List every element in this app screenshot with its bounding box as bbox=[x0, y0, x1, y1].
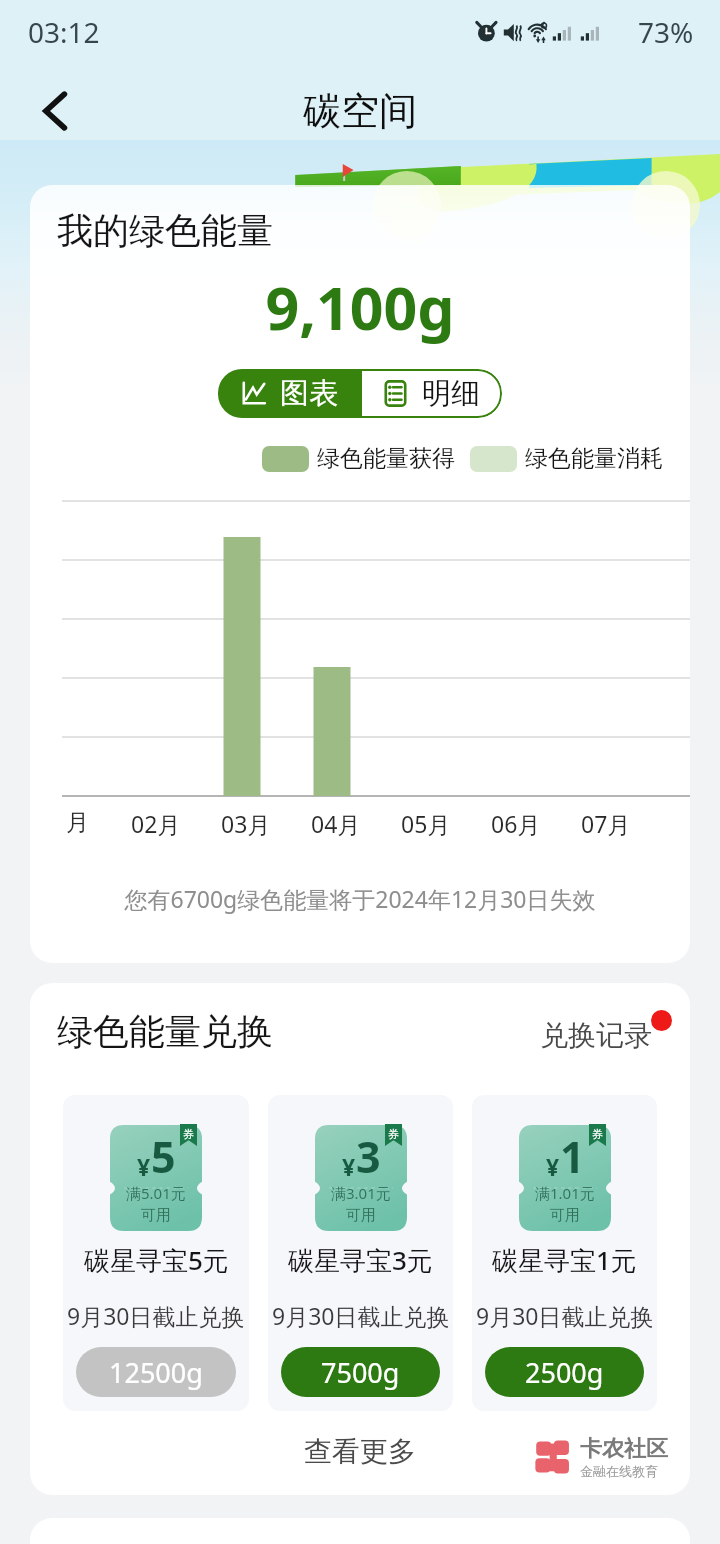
staticText: 碳星寻宝1元 bbox=[492, 1242, 637, 1278]
staticText: 绿色能量消耗 bbox=[525, 444, 663, 473]
staticText: 可用 bbox=[346, 1206, 376, 1225]
staticText: 图表 bbox=[280, 375, 338, 412]
staticText: 绿色能量兑换 bbox=[57, 1009, 273, 1054]
staticText: 满1.01元 bbox=[535, 1183, 595, 1203]
staticText: 金融在线教育 bbox=[580, 1463, 658, 1479]
button[interactable]: ¥ bbox=[268, 1095, 453, 1411]
staticText: 12500g bbox=[109, 1354, 203, 1391]
button[interactable]: 图表 bbox=[218, 369, 360, 418]
staticText: 满3.01元 bbox=[331, 1183, 391, 1203]
staticText: 9月30日截止兑换 bbox=[67, 1300, 245, 1331]
staticText: 卡农社区 bbox=[580, 1435, 668, 1463]
staticText: 02月 bbox=[131, 808, 181, 839]
button[interactable]: 12500g bbox=[76, 1347, 236, 1397]
staticText: 券 bbox=[592, 1127, 603, 1141]
staticText: 可用 bbox=[550, 1206, 580, 1225]
staticText: 碳星寻宝5元 bbox=[84, 1242, 229, 1278]
button[interactable]: 查看更多 bbox=[304, 1434, 416, 1469]
staticText: ¥ bbox=[342, 1151, 356, 1182]
staticText: 满5.01元 bbox=[126, 1183, 186, 1203]
staticText: 可用 bbox=[141, 1206, 171, 1225]
button[interactable]: 兑换记录 bbox=[540, 1010, 672, 1053]
button[interactable]: Back bbox=[22, 77, 90, 145]
staticText: 券 bbox=[388, 1127, 399, 1141]
staticText: 5 bbox=[151, 1127, 176, 1186]
staticText: 兑换记录 bbox=[540, 1018, 652, 1053]
staticText: ¥ bbox=[546, 1151, 560, 1182]
staticText: 7500g bbox=[321, 1354, 400, 1391]
button[interactable]: 7500g bbox=[281, 1347, 440, 1397]
staticText: 碳空间 bbox=[303, 87, 417, 135]
staticText: 券 bbox=[183, 1127, 194, 1141]
staticText: 碳星寻宝3元 bbox=[288, 1242, 433, 1278]
staticText: 73% bbox=[638, 13, 694, 51]
staticText: 月 bbox=[66, 808, 89, 837]
staticText: 03:12 bbox=[28, 13, 100, 51]
staticText: 9月30日截止兑换 bbox=[476, 1300, 654, 1331]
staticText: 9月30日截止兑换 bbox=[272, 1300, 450, 1331]
staticText: 我的绿色能量 bbox=[57, 208, 273, 253]
staticText: 3 bbox=[356, 1127, 381, 1186]
button[interactable]: ¥ bbox=[63, 1095, 249, 1411]
staticText: 07月 bbox=[581, 808, 631, 839]
staticText: 2500g bbox=[525, 1354, 604, 1391]
staticText: 1 bbox=[560, 1127, 585, 1186]
staticText: 明细 bbox=[422, 375, 480, 412]
staticText: 绿色能量获得 bbox=[317, 444, 455, 473]
staticText: ¥ bbox=[137, 1151, 151, 1182]
staticText: 06月 bbox=[491, 808, 541, 839]
button[interactable]: ¥ bbox=[472, 1095, 657, 1411]
button[interactable]: 2500g bbox=[485, 1347, 644, 1397]
staticText: 04月 bbox=[311, 808, 361, 839]
staticText: 9,100g bbox=[30, 267, 690, 347]
button[interactable]: 明细 bbox=[360, 369, 502, 418]
staticText: 03月 bbox=[221, 808, 271, 839]
staticText: 05月 bbox=[401, 808, 451, 839]
staticText: 您有6700g绿色能量将于2024年12月30日失效 bbox=[30, 883, 690, 914]
